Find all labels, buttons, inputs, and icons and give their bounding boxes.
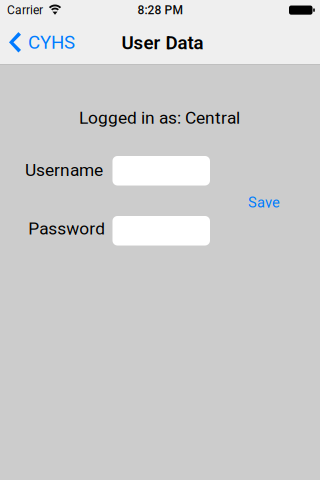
button[interactable]: Username: [112, 156, 210, 185]
staticText: 8:28 PM: [138, 3, 183, 17]
button[interactable]: Password: [112, 216, 210, 245]
button[interactable]: CYHS: [0, 20, 100, 64]
staticText: Logged in as: Central: [79, 108, 240, 128]
button[interactable]: Save: [240, 189, 288, 216]
staticText: Save: [248, 194, 280, 211]
staticText: CYHS: [28, 31, 75, 53]
staticText: User Data: [121, 32, 203, 54]
staticText: Username: [25, 160, 103, 180]
staticText: Carrier: [7, 3, 43, 17]
staticText: Password: [28, 218, 105, 239]
